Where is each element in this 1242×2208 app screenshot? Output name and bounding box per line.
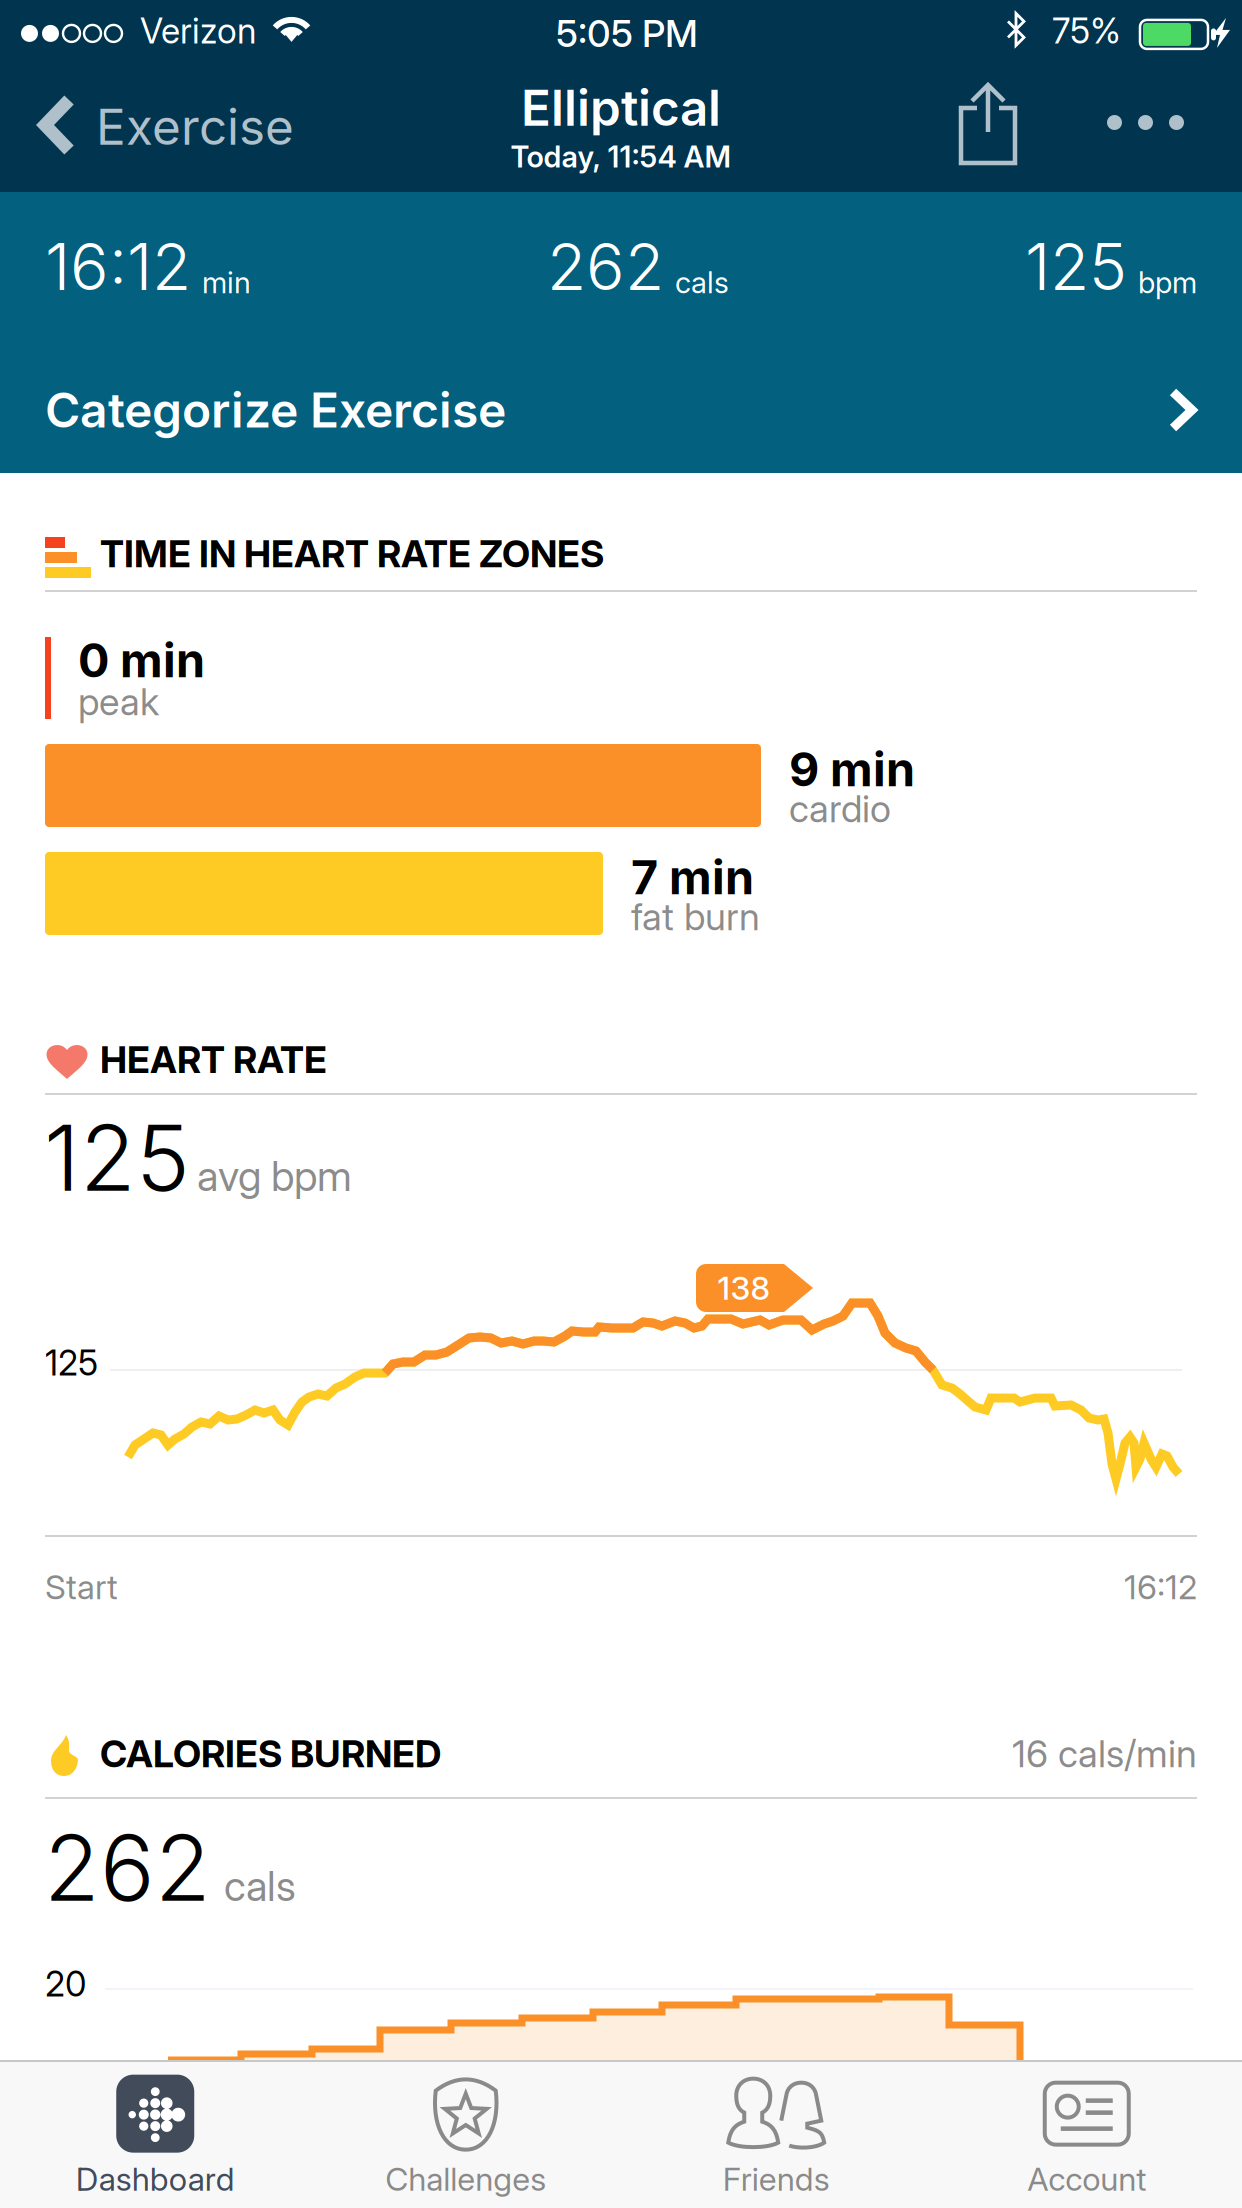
button[interactable]: Friends	[621, 2062, 931, 2208]
staticText: cals	[224, 1861, 296, 1911]
staticText: Start	[45, 1567, 118, 1607]
staticText: bpm	[1138, 265, 1197, 300]
staticText: Elliptical	[521, 78, 721, 138]
staticText: Challenges	[385, 2160, 546, 2198]
button[interactable]: Dashboard	[0, 2062, 310, 2208]
staticText: TIME IN HEART RATE ZONES	[100, 531, 604, 576]
staticText: Today, 11:54 AM	[510, 139, 731, 174]
staticText: 5:05 PM	[556, 11, 698, 56]
staticText: 262	[44, 1813, 211, 1923]
staticText: 75%	[1052, 10, 1121, 52]
button[interactable]: Share	[0, 62, 1048, 178]
staticText: 262	[547, 228, 664, 305]
staticText: Exercise	[96, 97, 294, 157]
staticText: 125	[45, 1342, 98, 1384]
staticText: 0 min	[78, 632, 205, 688]
staticText: HEART RATE	[100, 1037, 327, 1082]
staticText: min	[202, 265, 251, 300]
staticText: Categorize Exercise	[45, 381, 506, 439]
button[interactable]: Categorize Exercise	[0, 192, 1242, 448]
staticText: avg bpm	[197, 1151, 352, 1201]
staticText: Verizon	[140, 10, 256, 52]
staticText: 16:12	[1124, 1567, 1197, 1607]
staticText: 9 min	[789, 741, 915, 797]
staticText: 7 min	[631, 849, 754, 905]
staticText: CALORIES BURNED	[100, 1731, 441, 1776]
staticText: 20	[45, 1963, 86, 2005]
button[interactable]: Exercise	[0, 62, 320, 192]
staticText: Account	[1027, 2160, 1146, 2198]
staticText: fat burn	[631, 894, 760, 939]
staticText: Friends	[723, 2160, 830, 2198]
staticText: Dashboard	[76, 2160, 235, 2198]
staticText: 125	[1025, 228, 1127, 305]
staticText: cardio	[789, 786, 891, 831]
staticText: 16:12	[45, 228, 191, 305]
staticText: 125	[44, 1103, 190, 1213]
staticText: 138	[717, 1269, 769, 1307]
staticText: cals	[675, 265, 729, 300]
button[interactable]: More options	[0, 62, 1232, 170]
button[interactable]: Challenges	[310, 2062, 621, 2208]
staticText: peak	[78, 679, 159, 724]
button[interactable]: Account	[931, 2062, 1242, 2208]
staticText: 16 cals/min	[1012, 1731, 1197, 1776]
